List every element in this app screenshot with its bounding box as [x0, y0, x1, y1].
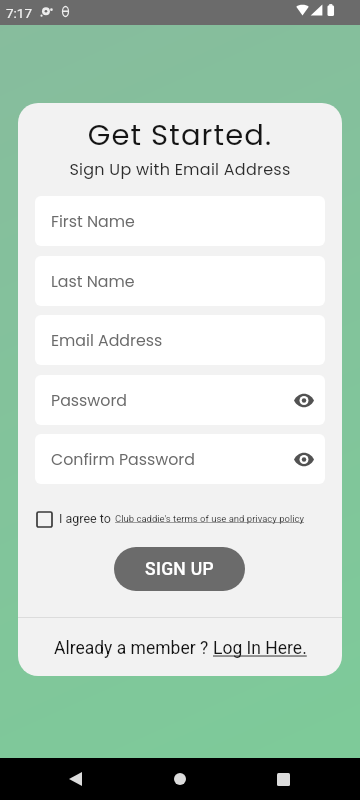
button[interactable]: Toggle password visibility — [291, 387, 317, 413]
staticText: Sign Up with Email Address — [18, 158, 342, 180]
button[interactable]: Recent apps — [265, 761, 301, 797]
staticText: 7:17 — [6, 5, 33, 21]
button[interactable]: Confirm Password — [35, 434, 325, 484]
staticText: Log In Here. — [213, 638, 307, 659]
button[interactable]: Home — [162, 761, 198, 797]
staticText: I agree to — [59, 511, 111, 526]
button[interactable]: Email Address — [35, 315, 325, 365]
button[interactable]: First Name — [35, 196, 325, 246]
button[interactable]: I agree checkbox — [34, 509, 55, 530]
staticText: Confirm Password — [51, 448, 195, 470]
staticText: Get Started. — [18, 115, 342, 156]
button[interactable]: Last Name — [35, 256, 325, 306]
staticText: First Name — [51, 210, 135, 232]
staticText: Email Address — [51, 329, 163, 351]
button[interactable]: Toggle password visibility — [291, 446, 317, 472]
button[interactable]: Club caddie's terms of use and privacy p… — [115, 513, 305, 524]
staticText: Last Name — [51, 270, 135, 292]
button[interactable]: Back — [57, 761, 93, 797]
staticText: SIGN UP — [145, 559, 214, 580]
button[interactable]: Already a member ? — [18, 638, 342, 659]
staticText: Already a member ? — [54, 638, 213, 659]
button[interactable]: SIGN UP — [114, 547, 245, 591]
staticText: Password — [51, 389, 127, 411]
button[interactable]: Password — [35, 375, 325, 425]
